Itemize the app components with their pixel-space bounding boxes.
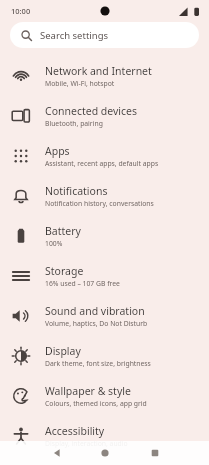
staticText: 100% xyxy=(45,239,63,248)
staticText: Notifications xyxy=(45,184,108,198)
staticText: Storage xyxy=(45,264,84,278)
staticText: Mobile, Wi-Fi, hotspot xyxy=(45,79,115,88)
button[interactable]: Home xyxy=(99,447,111,459)
staticText: Connected devices xyxy=(45,104,138,118)
button[interactable]: Storage xyxy=(0,256,209,296)
button[interactable]: Sound and vibration xyxy=(0,296,209,336)
staticText: 16% used – 107 GB free xyxy=(45,279,120,288)
staticText: Search settings xyxy=(40,29,109,42)
staticText: Wallpaper & style xyxy=(45,384,131,398)
staticText: Network and Internet xyxy=(45,64,152,78)
staticText: Dark theme, font size, brightness xyxy=(45,359,151,368)
staticText: Volume, haptics, Do Not Disturb xyxy=(45,319,148,328)
button[interactable]: Recents xyxy=(149,447,161,459)
staticText: Bluetooth, pairing xyxy=(45,119,103,128)
button[interactable]: Back xyxy=(51,447,63,459)
button[interactable]: Notifications xyxy=(0,176,209,216)
staticText: Assistant, recent apps, default apps xyxy=(45,159,159,168)
button[interactable]: Display xyxy=(0,336,209,376)
button[interactable]: Connected devices xyxy=(0,96,209,136)
staticText: Notification history, conversations xyxy=(45,199,154,208)
button[interactable]: Battery xyxy=(0,216,209,256)
button[interactable]: Network and Internet xyxy=(0,56,209,96)
staticText: Display xyxy=(45,344,81,358)
staticText: 10:00 xyxy=(11,6,31,16)
button[interactable]: Apps xyxy=(0,136,209,176)
staticText: Colours, themed icons, app grid xyxy=(45,399,147,408)
staticText: Battery xyxy=(45,224,81,238)
button[interactable]: Wallpaper & style xyxy=(0,376,209,416)
staticText: Sound and vibration xyxy=(45,304,145,318)
staticText: Accessibility xyxy=(45,424,105,438)
staticText: Display, interaction, audio xyxy=(45,439,128,448)
button[interactable]: Accessibility xyxy=(0,416,209,456)
staticText: Apps xyxy=(45,144,70,158)
button[interactable]: Search settings xyxy=(10,22,199,48)
